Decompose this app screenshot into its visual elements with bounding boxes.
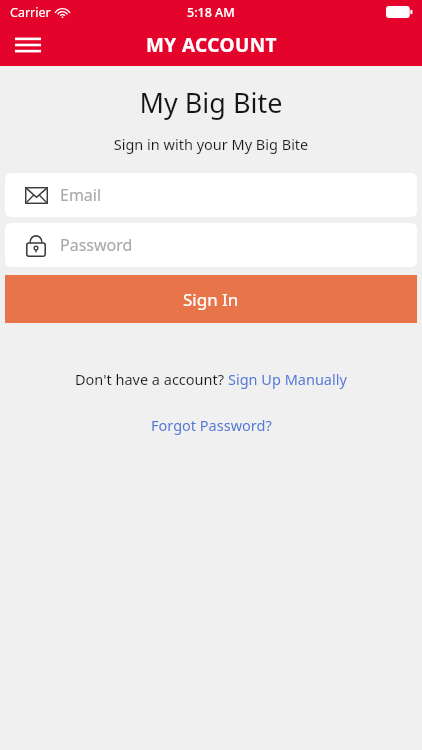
staticText: Sign Up Manually <box>228 369 347 389</box>
button[interactable]: Open navigation menu <box>8 25 48 65</box>
staticText: Email <box>60 184 102 206</box>
staticText: Carrier <box>10 4 51 21</box>
staticText: Password <box>60 234 133 256</box>
staticText: Sign in with your My Big Bite <box>0 134 422 154</box>
staticText: 5:18 AM <box>187 4 235 21</box>
staticText: Don't have a account? <box>75 369 228 389</box>
staticText: My Big Bite <box>0 84 422 121</box>
button[interactable]: Password <box>5 223 417 267</box>
staticText: Sign In <box>183 288 239 311</box>
button[interactable]: Forgot Password? <box>151 415 272 435</box>
staticText: MY ACCOUNT <box>146 32 277 58</box>
button[interactable]: Sign In <box>5 275 417 323</box>
button[interactable]: Sign Up Manually <box>228 369 347 389</box>
button[interactable]: Email <box>5 173 417 217</box>
staticText: Forgot Password? <box>151 415 272 435</box>
